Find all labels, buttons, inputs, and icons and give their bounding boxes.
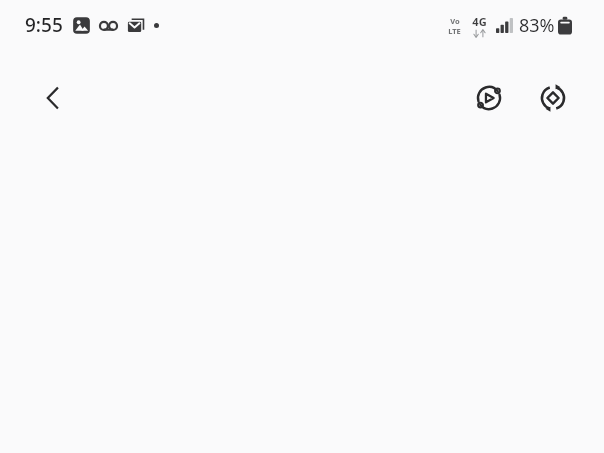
button[interactable]: Back — [29, 74, 77, 122]
staticText: 9:55 — [25, 12, 63, 38]
staticText: Vo — [450, 16, 460, 26]
button[interactable]: Play with effects — [465, 74, 513, 122]
button[interactable]: Rotate — [529, 74, 577, 122]
staticText: 83% — [519, 13, 555, 38]
staticText: 4G — [472, 14, 487, 29]
staticText: LTE — [448, 26, 461, 36]
